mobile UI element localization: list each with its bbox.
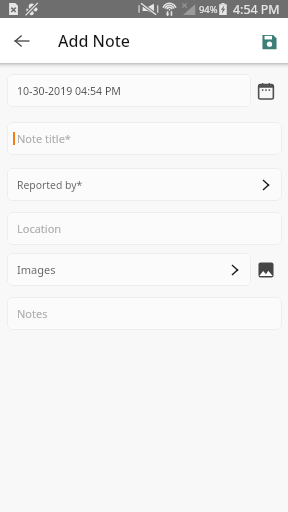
button[interactable]: Back (10, 29, 33, 52)
button[interactable]: Save (258, 30, 281, 53)
staticText: Note title* (17, 131, 71, 146)
staticText: Notes (17, 306, 48, 321)
button[interactable]: Location (7, 212, 282, 245)
button[interactable]: Notes (7, 297, 282, 330)
staticText: 94% (199, 3, 218, 16)
button[interactable]: Note title* (7, 122, 282, 155)
button[interactable]: Reported by* (7, 168, 282, 201)
staticText: 10-30-2019 04:54 PM (17, 84, 121, 98)
button[interactable]: Add image (258, 262, 274, 278)
staticText: Location (17, 221, 62, 236)
button[interactable]: Pick date (258, 83, 274, 99)
staticText: Reported by* (17, 178, 83, 192)
button[interactable]: Images (7, 253, 251, 286)
button[interactable]: 10-30-2019 04:54 PM (7, 74, 251, 107)
staticText: Add Note (58, 30, 130, 52)
staticText: 4:54 PM (233, 1, 280, 18)
staticText: Images (17, 262, 56, 277)
